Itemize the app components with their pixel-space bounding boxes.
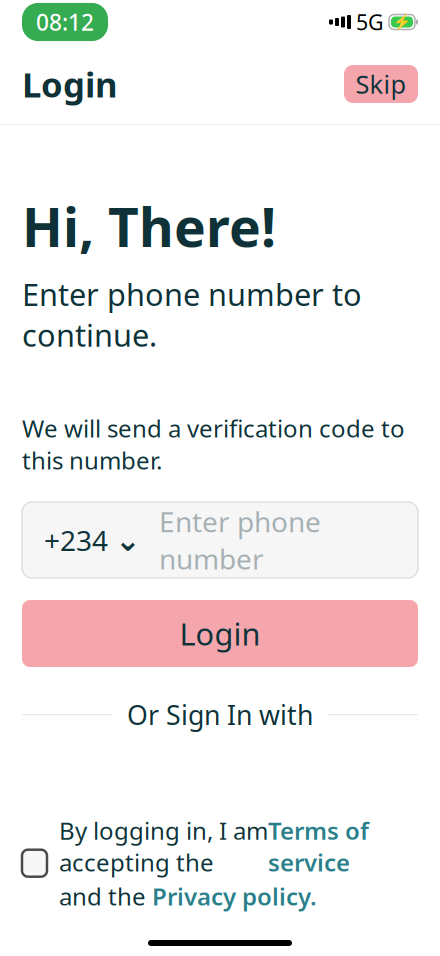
staticText: We will send a verification code to this…: [22, 412, 405, 476]
button[interactable]: Privacy policy.: [152, 880, 317, 912]
staticText: +234: [44, 521, 108, 559]
button[interactable]: Skip: [344, 65, 418, 103]
button[interactable]: +234: [22, 502, 147, 578]
staticText: 5G: [356, 8, 384, 36]
staticText: Login: [22, 61, 118, 107]
staticText: Terms of service: [268, 814, 369, 878]
staticText: ⚡: [393, 14, 411, 30]
button[interactable]: Accept terms checkbox: [22, 850, 47, 877]
staticText: Or Sign In with: [127, 697, 313, 732]
staticText: ⌄: [115, 523, 141, 557]
button[interactable]: Login: [22, 600, 418, 667]
staticText: 08:12: [36, 7, 94, 37]
button[interactable]: Terms of service: [268, 814, 369, 878]
staticText: Hi, There!: [22, 191, 276, 262]
staticText: By logging in, I am accepting the: [59, 814, 268, 878]
staticText: Skip: [355, 67, 406, 101]
staticText: Enter phone number: [159, 503, 321, 577]
staticText: Enter phone number to continue.: [22, 274, 362, 355]
staticText: and the: [59, 880, 152, 912]
staticText: Login: [179, 613, 260, 654]
staticText: Privacy policy.: [152, 880, 317, 912]
